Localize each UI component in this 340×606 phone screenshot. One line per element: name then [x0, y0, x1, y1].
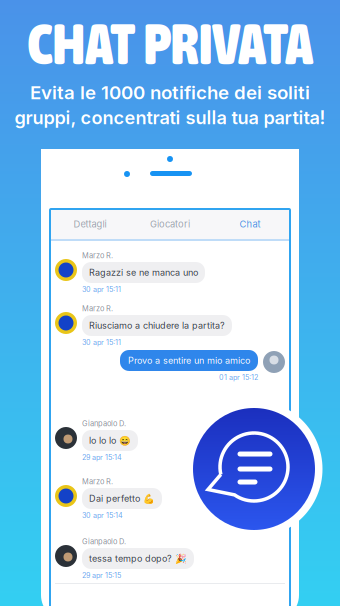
- staticText: Gianpaolo D.: [82, 419, 126, 428]
- button[interactable]: Marzo R.: [55, 477, 285, 520]
- staticText: 30 apr 15:11: [82, 338, 121, 347]
- staticText: tessa tempo dopo?: [89, 553, 172, 564]
- staticText: 29 apr 15:15: [82, 571, 121, 580]
- staticText: 30 apr 15:14: [82, 511, 123, 520]
- staticText: 01 apr 15:12: [219, 373, 258, 382]
- staticText: Marzo R.: [82, 251, 113, 260]
- button[interactable]: Gianpaolo D.: [55, 537, 285, 580]
- button[interactable]: Marzo R.: [55, 304, 285, 347]
- staticText: Gianpaolo D.: [82, 537, 126, 546]
- button[interactable]: Marzo R.: [55, 251, 285, 294]
- button[interactable]: Gianpaolo D.: [55, 419, 285, 462]
- button[interactable]: Giocatori: [130, 218, 210, 230]
- staticText: Provo a sentire un mio amico: [128, 355, 250, 366]
- staticText: Evita le 1000 notifiche dei soliti: [30, 81, 310, 104]
- staticText: gruppi, concentrati sulla tua partita!: [14, 107, 325, 129]
- staticText: Riusciamo a chiudere la partita?: [89, 320, 225, 331]
- staticText: CHAT PRIVATA: [27, 12, 312, 76]
- staticText: Chat: [239, 218, 260, 230]
- staticText: Giocatori: [150, 218, 190, 230]
- button[interactable]: Provo a sentire un mio amico: [55, 350, 285, 382]
- staticText: 29 apr 15:14: [82, 453, 122, 462]
- staticText: Dettagli: [73, 218, 106, 230]
- staticText: 🎉: [175, 553, 187, 564]
- button[interactable]: Dettagli: [50, 218, 130, 230]
- staticText: 💪: [143, 493, 155, 504]
- staticText: Marzo R.: [82, 304, 113, 313]
- staticText: 😄: [119, 435, 131, 446]
- staticText: lo lo lo: [89, 435, 116, 446]
- staticText: Dai perfetto: [89, 493, 140, 504]
- staticText: Marzo R.: [82, 477, 113, 486]
- staticText: 30 apr 15:11: [82, 285, 121, 294]
- button[interactable]: Chat: [210, 218, 290, 230]
- staticText: Ragazzi se ne manca uno: [89, 267, 198, 278]
